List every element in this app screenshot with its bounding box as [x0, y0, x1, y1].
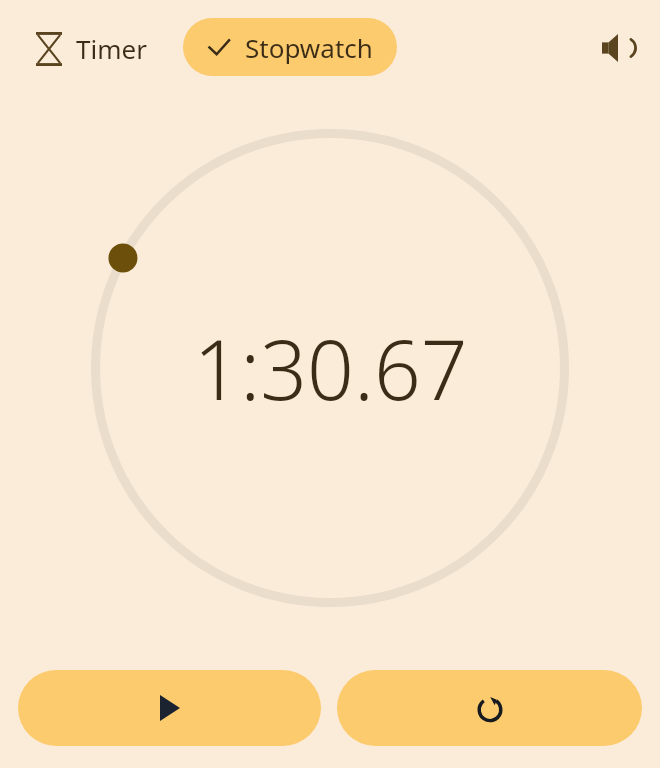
button[interactable]: Timer: [22, 21, 161, 76]
staticText: 1:30.67: [193, 312, 468, 424]
button[interactable]: Start: [18, 670, 321, 746]
button[interactable]: Reset: [337, 670, 642, 746]
staticText: Stopwatch: [245, 30, 373, 65]
button[interactable]: Stopwatch: [183, 18, 397, 76]
staticText: Timer: [76, 31, 147, 66]
button[interactable]: Sound: [590, 20, 646, 76]
